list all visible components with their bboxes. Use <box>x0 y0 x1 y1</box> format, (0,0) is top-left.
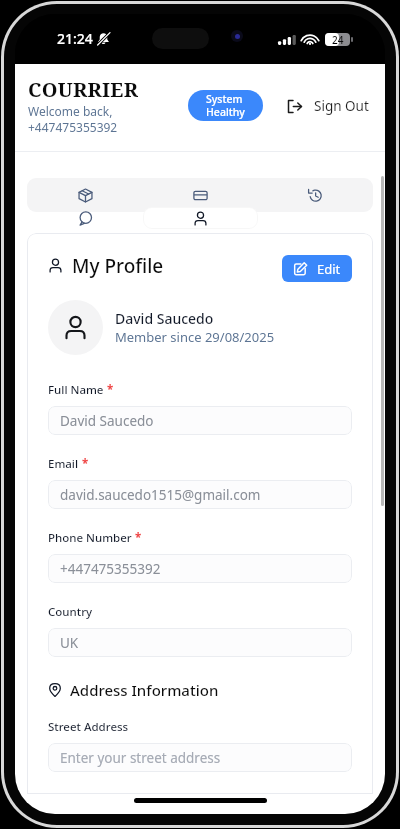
button[interactable]: System Healthy <box>188 90 263 121</box>
staticText: My Profile <box>72 253 164 279</box>
staticText: +447475355392 <box>60 560 161 578</box>
button[interactable]: Profile <box>143 207 258 229</box>
staticText: Sign Out <box>314 97 369 115</box>
staticText: Country <box>48 604 93 620</box>
button[interactable]: Enter your street address <box>48 743 352 772</box>
button[interactable]: Sign Out <box>263 91 369 121</box>
staticText: 21:24 <box>57 29 93 48</box>
staticText: Street Address <box>48 719 129 735</box>
button[interactable]: +447475355392 <box>48 554 352 583</box>
staticText: +447475355392 <box>28 119 118 135</box>
staticText: COURRIER <box>28 76 139 103</box>
staticText: Address Information <box>70 680 219 700</box>
staticText: Enter your street address <box>60 749 221 767</box>
staticText: david.saucedo1515@gmail.com <box>60 486 261 504</box>
staticText: David Saucedo <box>115 309 214 328</box>
staticText: * <box>107 382 114 398</box>
button[interactable]: Packages <box>27 178 143 212</box>
button[interactable]: david.saucedo1515@gmail.com <box>48 480 352 509</box>
staticText: Welcome back, <box>28 103 113 119</box>
staticText: Full Name <box>48 382 104 398</box>
staticText: 24 <box>332 33 344 46</box>
staticText: UK <box>60 634 79 652</box>
staticText: Email <box>48 456 79 472</box>
button[interactable]: History <box>258 178 373 212</box>
button[interactable]: David Saucedo <box>48 406 352 435</box>
button[interactable]: Edit <box>282 255 352 282</box>
staticText: David Saucedo <box>60 412 154 430</box>
staticText: * <box>135 530 142 546</box>
staticText: Edit <box>317 260 341 278</box>
button[interactable]: Payments <box>143 178 258 212</box>
staticText: * <box>82 456 89 472</box>
staticText: System Healthy <box>206 92 245 120</box>
button[interactable]: UK <box>48 628 352 657</box>
button[interactable]: Messages <box>27 207 143 229</box>
staticText: Phone Number <box>48 530 132 546</box>
staticText: Member since 29/08/2025 <box>115 328 275 346</box>
